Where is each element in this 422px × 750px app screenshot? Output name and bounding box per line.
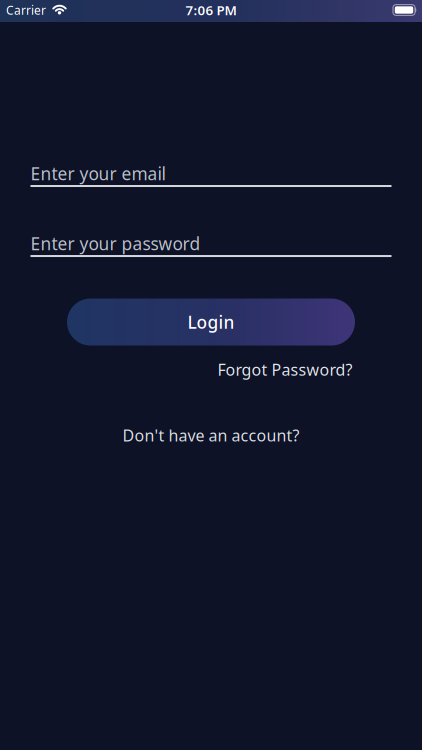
staticText: Don't have an account? [122,425,299,446]
staticText: Login [187,310,234,333]
staticText: Enter your email [30,162,165,185]
staticText: 7:06 PM [185,1,236,19]
staticText: Carrier [6,2,46,18]
staticText: Enter your password [30,232,200,255]
button[interactable]: Forgot Password? [217,359,352,380]
button[interactable]: Don't have an account? [122,425,299,446]
button[interactable]: Login [67,298,355,345]
button[interactable]: Enter your password [30,232,391,257]
button[interactable]: Enter your email [30,162,391,187]
staticText: Forgot Password? [217,359,352,380]
